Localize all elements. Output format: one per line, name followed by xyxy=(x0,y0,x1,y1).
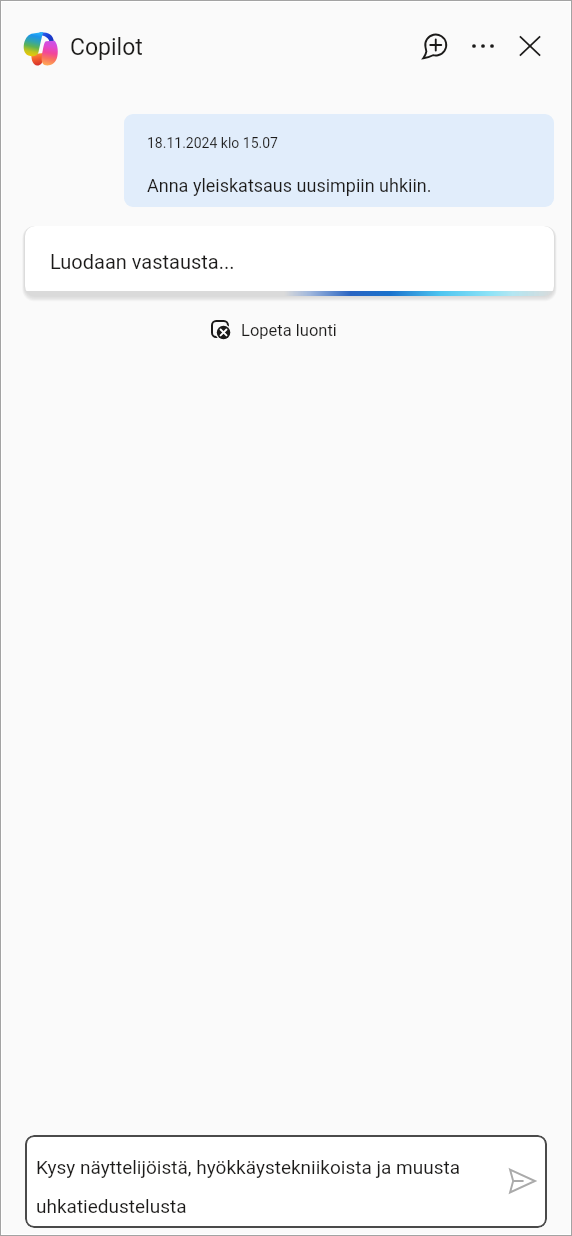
button[interactable]: Send xyxy=(498,1157,546,1205)
button[interactable]: Kysy näyttelijöistä, hyökkäystekniikoist… xyxy=(25,1135,547,1228)
staticText: Lopeta luonti xyxy=(241,321,337,340)
button[interactable]: 18.11.2024 klo 15.07 xyxy=(124,114,554,207)
button[interactable]: Luodaan vastausta... xyxy=(25,226,554,296)
staticText: Luodaan vastausta... xyxy=(50,250,235,273)
button[interactable]: More options xyxy=(459,22,507,70)
staticText: 18.11.2024 klo 15.07 xyxy=(147,135,278,151)
button[interactable]: New chat xyxy=(410,22,458,70)
staticText: Anna yleiskatsaus uusimpiin uhkiin. xyxy=(147,175,432,196)
staticText: Copilot xyxy=(70,34,143,61)
button[interactable]: Close xyxy=(506,22,554,70)
staticText: Kysy näyttelijöistä, hyökkäystekniikoist… xyxy=(36,1156,476,1217)
button[interactable]: Lopeta luonti xyxy=(205,313,343,344)
